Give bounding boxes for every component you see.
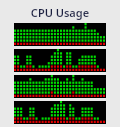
button[interactable]: CPU core 2 usage graph [14, 49, 106, 72]
button[interactable]: CPU core 1 usage graph [14, 23, 106, 46]
button[interactable]: CPU core 3 usage graph [14, 75, 106, 98]
button[interactable]: CPU core 4 usage graph [14, 101, 106, 124]
button[interactable]: CPU Usage [0, 5, 120, 20]
